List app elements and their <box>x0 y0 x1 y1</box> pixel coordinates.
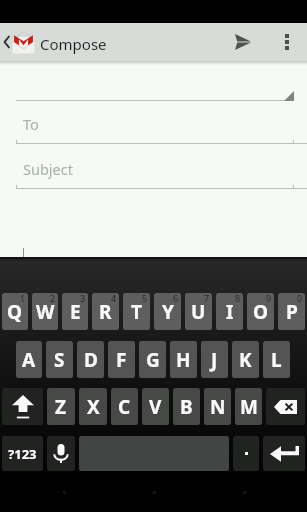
staticText: 4 <box>111 293 117 304</box>
button[interactable]: H <box>170 341 197 378</box>
button[interactable]: R <box>92 293 119 330</box>
button[interactable]: Period <box>233 436 259 471</box>
staticText: G <box>146 347 160 373</box>
staticText: 7 <box>204 293 210 304</box>
button[interactable]: U <box>185 293 212 330</box>
button[interactable]: Subject <box>0 155 307 189</box>
button[interactable]: P <box>278 293 305 330</box>
staticText: J <box>211 347 218 373</box>
button[interactable]: To <box>0 110 307 144</box>
staticText: F <box>116 347 127 373</box>
button[interactable]: Symbols <box>2 436 43 471</box>
button[interactable]: S <box>46 341 73 378</box>
button[interactable]: Delete <box>266 388 305 425</box>
staticText: X <box>87 394 100 420</box>
staticText: V <box>149 394 162 420</box>
staticText: S <box>54 347 65 373</box>
staticText: Z <box>55 394 67 420</box>
button[interactable]: G <box>139 341 166 378</box>
staticText: A <box>22 347 36 373</box>
staticText: C <box>118 394 131 420</box>
button[interactable]: Q <box>2 293 28 330</box>
button[interactable]: Z <box>47 388 75 425</box>
button[interactable]: V <box>142 388 169 425</box>
staticText: 8 <box>235 293 241 304</box>
button[interactable]: Navigate up <box>0 23 37 61</box>
button[interactable]: More options <box>276 23 300 61</box>
button[interactable]: L <box>263 341 290 378</box>
staticText: W <box>36 299 55 325</box>
staticText: R <box>99 299 112 325</box>
staticText: 5 <box>142 293 148 304</box>
staticText: I <box>226 299 234 325</box>
staticText: Q <box>7 299 23 325</box>
staticText: Compose <box>40 34 107 54</box>
staticText: H <box>176 347 191 373</box>
staticText: Y <box>162 299 174 325</box>
staticText: 3 <box>80 293 86 304</box>
staticText: L <box>271 347 282 373</box>
staticText: 0 <box>297 293 303 304</box>
button[interactable]: A <box>16 341 42 378</box>
button[interactable]: D <box>77 341 104 378</box>
button[interactable]: N <box>204 388 231 425</box>
button[interactable]: J <box>201 341 228 378</box>
button[interactable]: W <box>32 293 58 330</box>
staticText: To <box>23 114 39 134</box>
staticText: N <box>210 394 226 420</box>
button[interactable]: E <box>62 293 88 330</box>
button[interactable]: Enter <box>263 436 305 471</box>
staticText: 2 <box>50 293 56 304</box>
staticText: E <box>70 299 81 325</box>
button[interactable]: C <box>111 388 138 425</box>
button[interactable]: Shift <box>2 388 43 425</box>
staticText: D <box>84 347 98 373</box>
staticText: T <box>131 299 142 325</box>
staticText: ?123 <box>8 445 37 463</box>
button[interactable]: B <box>173 388 200 425</box>
staticText: P <box>286 299 298 325</box>
staticText: 1 <box>20 293 26 304</box>
button[interactable]: K <box>232 341 259 378</box>
staticText: 6 <box>173 293 179 304</box>
button[interactable]: T <box>123 293 150 330</box>
staticText: K <box>239 347 252 373</box>
button[interactable]: Send <box>226 23 260 61</box>
staticText: B <box>180 394 193 420</box>
staticText: U <box>191 299 206 325</box>
button[interactable]: M <box>235 388 262 425</box>
button[interactable]: O <box>247 293 274 330</box>
button[interactable]: F <box>108 341 135 378</box>
button[interactable]: I <box>216 293 243 330</box>
button[interactable]: Y <box>154 293 181 330</box>
button[interactable]: Voice input <box>47 436 75 471</box>
staticText: 9 <box>266 293 272 304</box>
staticText: Subject <box>23 159 73 179</box>
staticText: O <box>253 299 269 325</box>
staticText: M <box>240 394 258 420</box>
button[interactable]: X <box>79 388 107 425</box>
